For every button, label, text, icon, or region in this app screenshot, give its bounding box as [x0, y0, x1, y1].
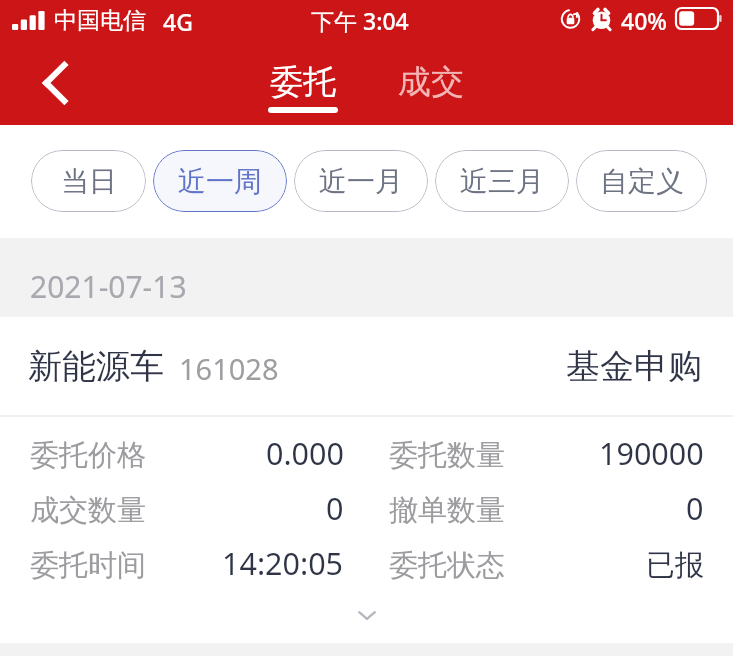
- button[interactable]: 近一月: [294, 150, 428, 212]
- staticText: 0.000: [266, 432, 344, 474]
- staticText: 基金申购: [566, 345, 702, 388]
- staticText: 近一周: [178, 164, 262, 199]
- staticText: 成交数量: [30, 492, 146, 529]
- button[interactable]: 近一周: [153, 150, 287, 212]
- staticText: 4G: [163, 6, 193, 37]
- staticText: 成交: [398, 61, 464, 103]
- staticText: 当日: [61, 164, 117, 199]
- staticText: 委托价格: [30, 437, 146, 474]
- staticText: 委托: [270, 61, 336, 103]
- staticText: 14:20:05: [222, 542, 344, 584]
- staticText: 40%: [621, 5, 667, 36]
- staticText: 中国电信: [54, 6, 146, 35]
- staticText: 2021-07-13: [30, 266, 187, 307]
- staticText: 近一月: [319, 164, 403, 199]
- button[interactable]: 自定义: [576, 150, 707, 212]
- button[interactable]: 当日: [31, 150, 146, 212]
- staticText: 已报: [646, 547, 704, 584]
- button[interactable]: Back: [22, 48, 88, 118]
- staticText: 委托数量: [389, 437, 505, 474]
- staticText: 190000: [599, 432, 704, 474]
- staticText: 委托状态: [389, 547, 505, 584]
- staticText: 新能源车: [28, 345, 164, 388]
- staticText: 161028: [179, 349, 279, 388]
- staticText: 0: [686, 487, 704, 529]
- button[interactable]: 近三月: [435, 150, 569, 212]
- staticText: 委托时间: [30, 547, 146, 584]
- staticText: 撤单数量: [389, 492, 505, 529]
- button[interactable]: 委托: [258, 61, 348, 123]
- button[interactable]: 成交: [386, 61, 476, 123]
- staticText: 0: [326, 487, 344, 529]
- staticText: 近三月: [460, 164, 544, 199]
- staticText: 自定义: [600, 164, 684, 199]
- staticText: 下午 3:04: [311, 5, 409, 36]
